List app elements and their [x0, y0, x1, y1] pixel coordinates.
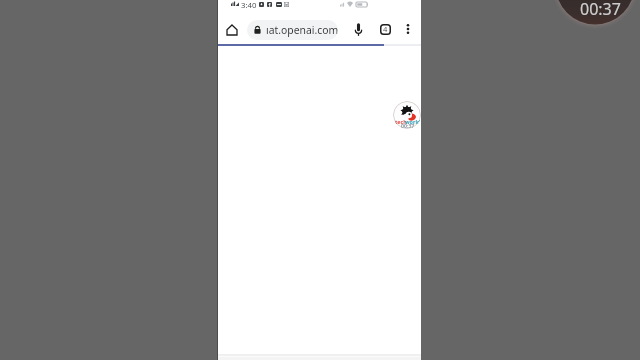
- staticText: ıat.openai.com: [266, 23, 338, 37]
- button[interactable]: Home: [221, 19, 243, 41]
- staticText: 3:40: [241, 0, 257, 11]
- staticText: 4: [383, 24, 388, 34]
- staticText: 00:37: [401, 122, 415, 129]
- button[interactable]: More options: [397, 18, 419, 40]
- staticText: tech: [395, 118, 407, 125]
- button[interactable]: Switch tabs: [374, 18, 396, 40]
- button[interactable]: ıat.openai.com: [247, 20, 338, 40]
- other: Channel logo: [393, 101, 421, 129]
- staticText: 00:37: [580, 0, 621, 20]
- staticText: world: [405, 118, 421, 125]
- button[interactable]: Voice search: [347, 18, 369, 40]
